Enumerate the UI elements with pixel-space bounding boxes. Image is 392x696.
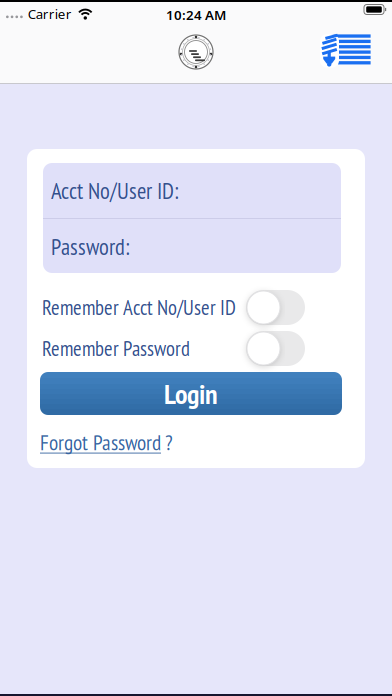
staticText: Carrier (28, 5, 72, 23)
staticText: Forgot Password (40, 428, 161, 456)
button[interactable]: Remember Acct No/User ID (246, 290, 305, 325)
button[interactable]: Remember Password (246, 331, 305, 366)
staticText: ? (165, 428, 173, 456)
staticText: Remember Password (42, 335, 190, 362)
staticText: Password: (51, 232, 130, 261)
button[interactable]: Login (40, 372, 342, 415)
button[interactable]: Energy usage (321, 34, 371, 68)
staticText: 10:24 AM (166, 6, 226, 24)
button[interactable]: Forgot Password (40, 428, 173, 456)
button[interactable]: Acct No/User ID: (43, 163, 341, 218)
staticText: Acct No/User ID: (51, 176, 179, 205)
staticText: Remember Acct No/User ID (42, 294, 236, 321)
button[interactable]: Password: (43, 219, 341, 274)
staticText: Login (164, 375, 218, 412)
